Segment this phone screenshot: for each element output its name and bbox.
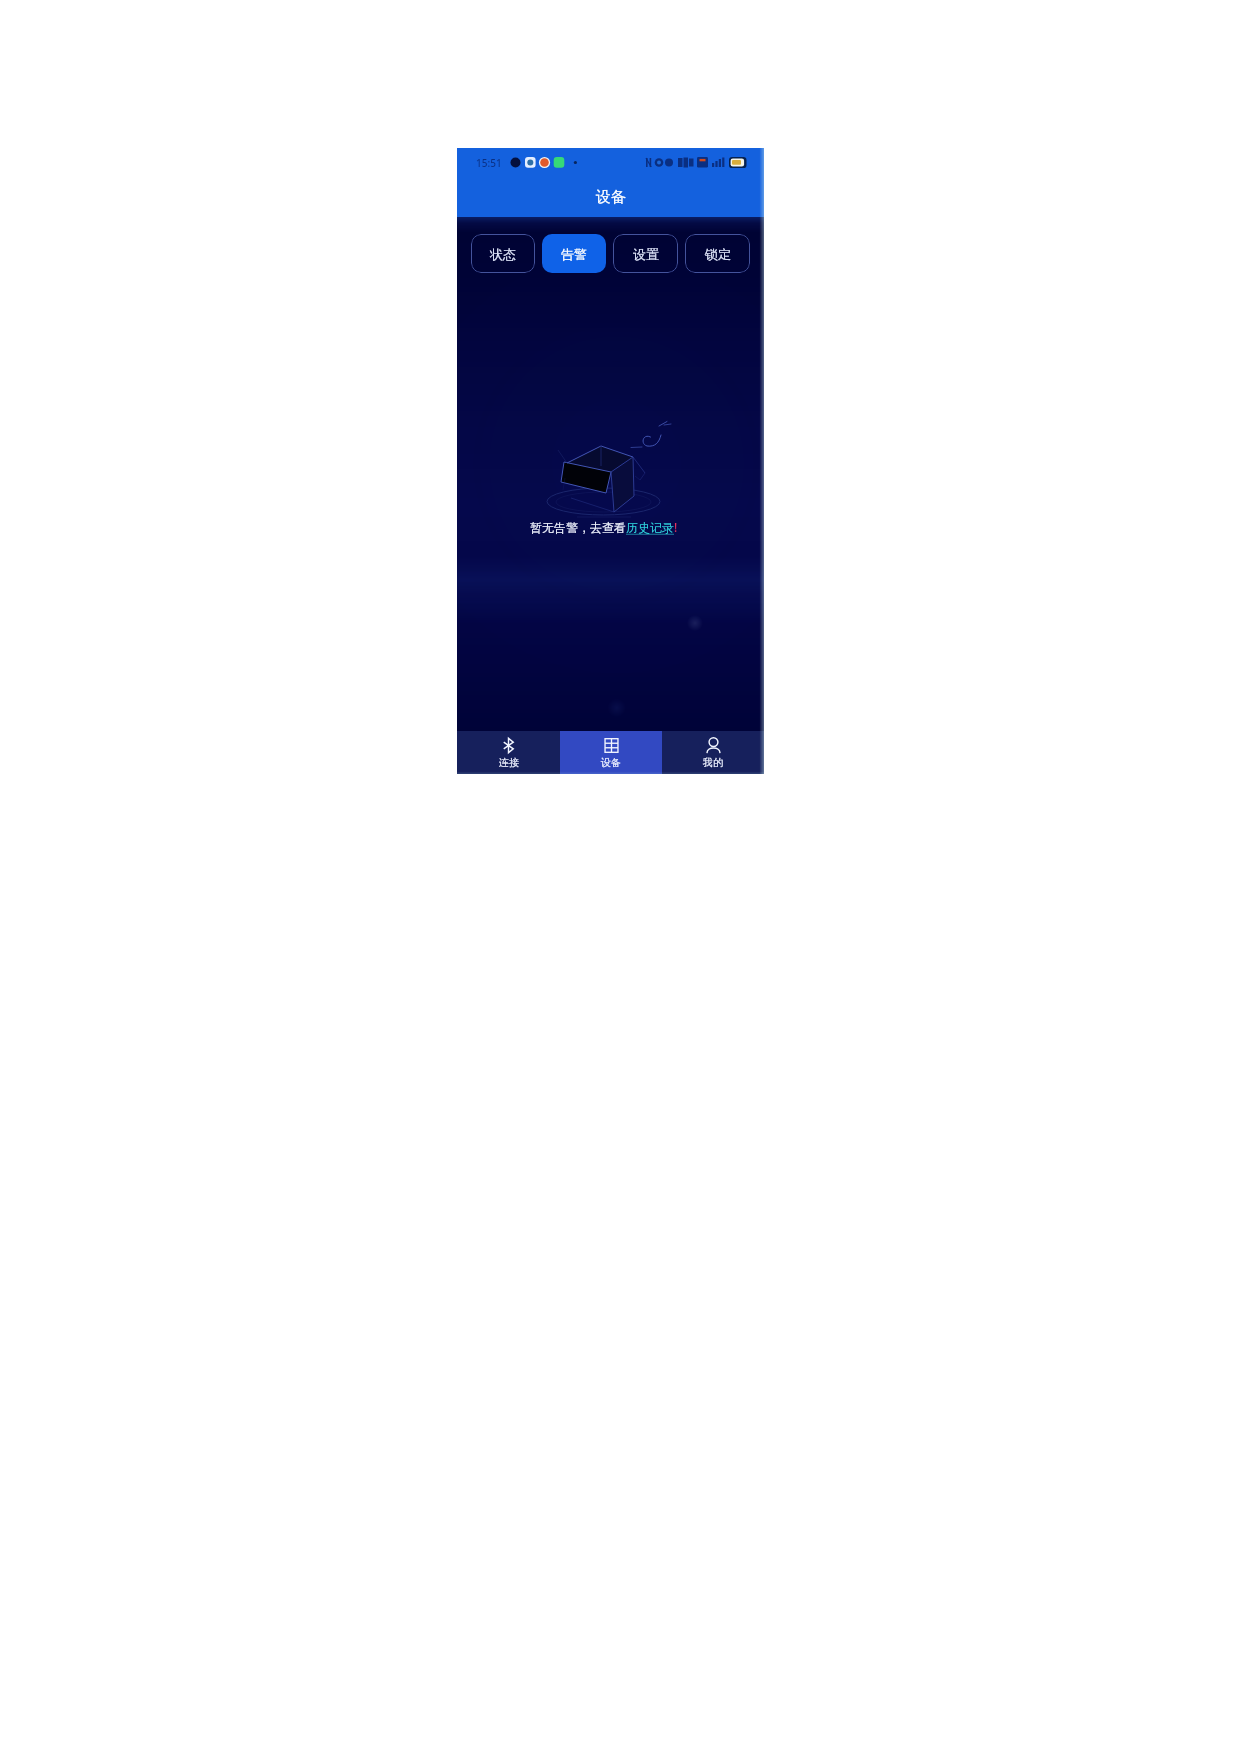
button[interactable]: 锁定 [685,234,750,273]
staticText: 设备 [601,756,621,769]
staticText: 设置 [633,246,659,262]
staticText: ! [674,519,678,535]
staticText: 连接 [499,756,519,769]
staticText: 暂无告警，去查看 [530,520,626,535]
staticText: 15:51 [476,156,502,170]
button[interactable]: 设备 [560,731,662,774]
button[interactable]: 状态 [471,234,535,273]
staticText: 告警 [561,246,587,262]
staticText: 我的 [703,756,723,769]
staticText: 设备 [596,188,626,207]
staticText: 状态 [490,246,516,262]
button[interactable]: 连接 Bluetooth [457,731,560,774]
button[interactable]: 历史记录 [626,520,674,535]
staticText: 锁定 [705,246,731,262]
button[interactable]: 告警 [542,234,606,273]
button[interactable]: 我的 [662,731,764,774]
button[interactable]: 设置 [613,234,678,273]
